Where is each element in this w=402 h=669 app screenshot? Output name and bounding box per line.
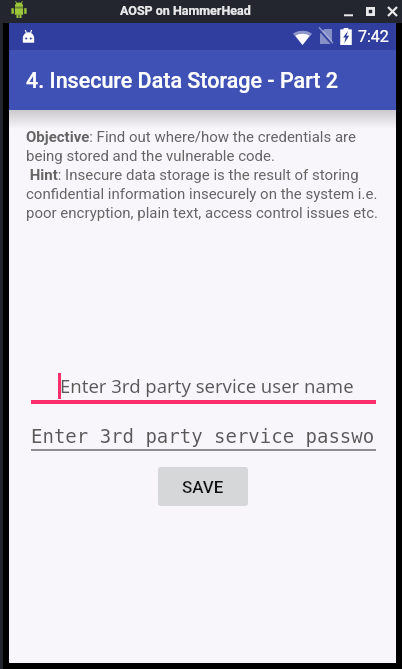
staticText: AOSP on HammerHead [120, 3, 251, 18]
staticText: Enter 3rd party service user name [60, 373, 354, 398]
button[interactable]: Enter 3rd party service password [31, 413, 376, 457]
button[interactable]: Close [381, 0, 402, 22]
button[interactable]: Minimize [337, 0, 359, 22]
staticText: Enter 3rd party service password [31, 425, 376, 447]
staticText: 4. Insecure Data Storage - Part 2 [26, 68, 339, 93]
button[interactable]: Maximize [359, 0, 381, 22]
button[interactable]: Enter 3rd party service user name [31, 363, 376, 407]
button[interactable]: 4. Insecure Data Storage - Part 2 [9, 50, 396, 110]
button[interactable]: SAVE [158, 467, 248, 506]
staticText: SAVE [182, 477, 224, 497]
staticText: 7:42 [358, 27, 389, 46]
staticText: Objective: Find out where/how the creden… [26, 128, 388, 222]
